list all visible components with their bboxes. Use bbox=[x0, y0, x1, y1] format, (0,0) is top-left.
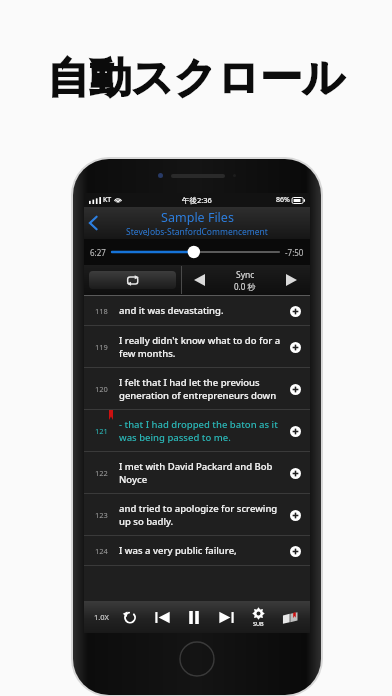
staticText: SUB bbox=[253, 620, 264, 627]
staticText: KT bbox=[103, 195, 112, 205]
button[interactable]: 121 bbox=[84, 410, 310, 451]
button[interactable]: 119 bbox=[84, 326, 310, 367]
staticText: I felt that I had let the previous bbox=[119, 376, 260, 389]
staticText: 6:27 bbox=[90, 247, 106, 258]
staticText: 122 bbox=[95, 468, 108, 478]
button[interactable]: Bookmarks bbox=[274, 601, 306, 633]
staticText: I really didn't know what to do for a bbox=[119, 334, 281, 347]
button[interactable] bbox=[112, 243, 279, 261]
button[interactable]: Add bookmark bbox=[285, 505, 305, 525]
staticText: I met with David Packard and Bob bbox=[119, 460, 273, 473]
staticText: 午後2:36 bbox=[182, 195, 212, 205]
button[interactable]: Add bookmark bbox=[285, 337, 305, 357]
button[interactable]: Sync earlier bbox=[182, 265, 216, 295]
staticText: SteveJobs-StanfordCommencement bbox=[126, 226, 268, 238]
staticText: and tried to apologize for screwing bbox=[119, 502, 278, 515]
staticText: 自動スクロール bbox=[47, 52, 345, 105]
button[interactable]: Next bbox=[210, 601, 242, 633]
button[interactable]: Add bookmark bbox=[285, 421, 305, 441]
staticText: - that I had dropped the baton as it bbox=[119, 418, 278, 431]
button[interactable]: Add bookmark bbox=[285, 379, 305, 399]
button[interactable]: 124 bbox=[84, 536, 310, 565]
button[interactable]: Add bookmark bbox=[285, 301, 305, 321]
button[interactable]: 118 bbox=[84, 296, 310, 325]
button[interactable]: Previous bbox=[146, 601, 178, 633]
staticText: 118 bbox=[95, 306, 108, 316]
button[interactable]: Replay bbox=[114, 601, 146, 633]
button[interactable]: Add bookmark bbox=[285, 463, 305, 483]
staticText: and it was devastating. bbox=[119, 304, 224, 317]
staticText: 119 bbox=[95, 342, 108, 352]
staticText: 1.0X bbox=[94, 612, 109, 622]
button[interactable]: Sync later bbox=[274, 265, 308, 295]
staticText: 124 bbox=[95, 546, 108, 556]
staticText: 86% bbox=[276, 195, 290, 205]
staticText: generation of entrepreneurs down bbox=[119, 389, 277, 402]
staticText: was being passed to me. bbox=[119, 431, 231, 444]
staticText: Noyce bbox=[119, 473, 148, 486]
button[interactable]: Add bookmark bbox=[285, 541, 305, 561]
staticText: Sample Files bbox=[161, 209, 234, 226]
button[interactable]: Subtitle settings bbox=[242, 601, 274, 633]
staticText: 121 bbox=[95, 426, 108, 436]
button[interactable]: Pause bbox=[178, 601, 210, 633]
button[interactable]: 123 bbox=[84, 494, 310, 535]
staticText: -7:50 bbox=[285, 247, 304, 258]
staticText: few months. bbox=[119, 347, 176, 360]
staticText: I was a very public failure, bbox=[119, 544, 237, 557]
button[interactable]: Back bbox=[84, 207, 310, 239]
staticText: up so badly. bbox=[119, 515, 174, 528]
button[interactable]: Repeat bbox=[89, 271, 176, 289]
staticText: Sync bbox=[236, 269, 255, 281]
button[interactable]: 122 bbox=[84, 452, 310, 493]
button[interactable]: 120 bbox=[84, 368, 310, 409]
staticText: 123 bbox=[95, 510, 108, 520]
staticText: 120 bbox=[95, 384, 108, 394]
button[interactable]: Back bbox=[84, 211, 102, 235]
staticText: 0.0 秒 bbox=[234, 281, 256, 292]
